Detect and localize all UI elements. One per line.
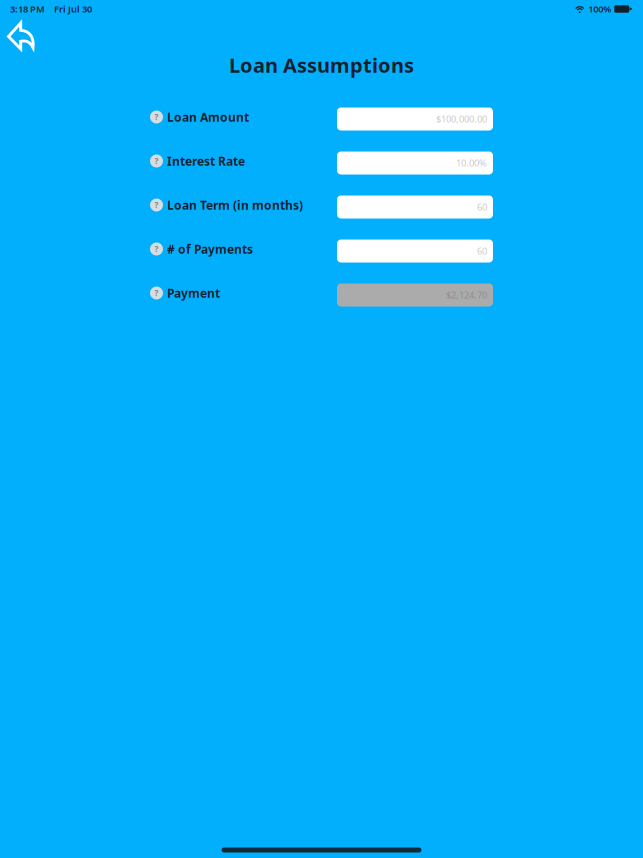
staticText: Loan Amount <box>167 109 249 125</box>
staticText: Fri Jul 30 <box>54 3 92 15</box>
staticText: ? <box>154 156 158 166</box>
staticText: 60 <box>477 245 487 257</box>
button[interactable]: 10.00% <box>337 151 493 174</box>
button[interactable]: Help about Loan Amount <box>144 105 168 129</box>
button[interactable]: $2,124.70 <box>337 283 493 306</box>
button[interactable]: 60 <box>337 239 493 262</box>
button[interactable]: Help about Interest Rate <box>144 149 168 173</box>
staticText: ? <box>154 112 158 122</box>
staticText: Loan Term (in months) <box>167 197 303 213</box>
button[interactable]: Help about Payment <box>144 281 168 305</box>
staticText: Loan Assumptions <box>229 52 414 78</box>
staticText: 100% <box>588 3 611 15</box>
staticText: 3:18 PM <box>10 3 45 15</box>
staticText: ? <box>154 200 158 210</box>
button[interactable]: $100,000.00 <box>337 107 493 130</box>
staticText: Interest Rate <box>167 153 245 169</box>
button[interactable]: Help about # of Payments <box>144 237 168 261</box>
staticText: $100,000.00 <box>436 113 487 125</box>
staticText: $2,124.70 <box>446 289 487 301</box>
staticText: ? <box>154 244 158 254</box>
staticText: # of Payments <box>167 241 253 257</box>
staticText: 60 <box>477 201 487 213</box>
staticText: Payment <box>167 285 220 301</box>
button[interactable]: Back <box>0 13 45 59</box>
button[interactable]: 60 <box>337 195 493 218</box>
staticText: 10.00% <box>456 157 487 169</box>
button[interactable]: Help about Loan Term (in months) <box>144 193 168 217</box>
staticText: ? <box>154 288 158 298</box>
